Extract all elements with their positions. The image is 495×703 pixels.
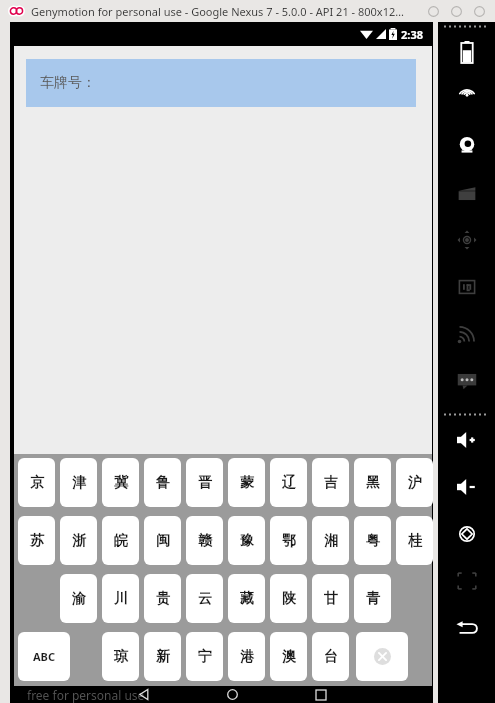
button[interactable]: Home [214, 686, 250, 703]
staticText: 台 [324, 648, 338, 666]
button[interactable]: 云 [186, 574, 223, 623]
staticText: 沪 [408, 474, 422, 492]
staticText: 粤 [366, 532, 380, 550]
staticText: 蒙 [240, 474, 254, 492]
button[interactable]: Back [438, 604, 495, 651]
button[interactable]: 蒙 [228, 458, 265, 507]
staticText: 藏 [240, 590, 254, 608]
button[interactable]: Identifiers [438, 263, 495, 310]
button[interactable]: 青 [354, 574, 391, 623]
button[interactable]: 车牌号： [26, 59, 416, 107]
button[interactable]: Maximize [445, 0, 468, 22]
staticText: 京 [30, 474, 44, 492]
button[interactable]: 晋 [186, 458, 223, 507]
staticText: 皖 [114, 532, 128, 550]
button[interactable]: Battery [438, 28, 495, 75]
button[interactable]: ABC [18, 632, 70, 681]
button[interactable]: 台 [312, 632, 349, 681]
button[interactable]: 粤 [354, 516, 391, 565]
button[interactable]: Recents [303, 686, 339, 703]
staticText: 川 [114, 590, 128, 608]
button[interactable]: 鲁 [144, 458, 181, 507]
button[interactable]: 鄂 [270, 516, 307, 565]
button[interactable]: 冀 [102, 458, 139, 507]
button[interactable]: 闽 [144, 516, 181, 565]
staticText: Genymotion for personal use - Google Nex… [31, 4, 404, 19]
button[interactable]: Delete [356, 632, 408, 681]
button[interactable]: 新 [144, 632, 181, 681]
staticText: 赣 [198, 532, 212, 550]
button[interactable]: Network [438, 310, 495, 357]
staticText: 宁 [198, 648, 212, 666]
staticText: 闽 [156, 532, 170, 550]
button[interactable]: Back [126, 686, 162, 703]
button[interactable]: 吉 [312, 458, 349, 507]
staticText: 鲁 [156, 474, 170, 492]
staticText: 2:38 [401, 27, 423, 42]
button[interactable]: 澳 [270, 632, 307, 681]
staticText: free for personal use [27, 687, 145, 703]
button[interactable]: 陕 [270, 574, 307, 623]
button[interactable]: Messaging [438, 357, 495, 404]
staticText: 豫 [240, 532, 254, 550]
staticText: 辽 [282, 474, 296, 492]
button[interactable]: Actual size [438, 557, 495, 604]
button[interactable]: 豫 [228, 516, 265, 565]
button[interactable]: Camera [438, 122, 495, 169]
staticText: 贵 [156, 590, 170, 608]
button[interactable]: 黑 [354, 458, 391, 507]
button[interactable]: Volume up [438, 416, 495, 463]
staticText: ABC [33, 649, 55, 664]
button[interactable]: 辽 [270, 458, 307, 507]
staticText: 车牌号： [40, 74, 96, 92]
staticText: 港 [240, 648, 254, 666]
button[interactable]: Minimize [422, 0, 445, 22]
staticText: 黑 [366, 474, 380, 492]
button[interactable]: 贵 [144, 574, 181, 623]
button[interactable]: Video recording [438, 169, 495, 216]
button[interactable]: 苏 [18, 516, 55, 565]
button[interactable]: 浙 [60, 516, 97, 565]
button[interactable]: GPS [438, 75, 495, 122]
staticText: 渝 [72, 590, 86, 608]
button[interactable]: 桂 [396, 516, 433, 565]
button[interactable]: Rotate [438, 510, 495, 557]
button[interactable]: 京 [18, 458, 55, 507]
button[interactable]: 渝 [60, 574, 97, 623]
staticText: 甘 [324, 590, 338, 608]
staticText: 鄂 [282, 532, 296, 550]
staticText: 冀 [114, 474, 128, 492]
staticText: 陕 [282, 590, 296, 608]
staticText: 湘 [324, 532, 338, 550]
button[interactable]: 港 [228, 632, 265, 681]
button[interactable]: 湘 [312, 516, 349, 565]
staticText: 浙 [72, 532, 86, 550]
button[interactable]: 川 [102, 574, 139, 623]
staticText: 苏 [30, 532, 44, 550]
staticText: 琼 [114, 648, 128, 666]
staticText: 青 [366, 590, 380, 608]
button[interactable]: 赣 [186, 516, 223, 565]
button[interactable]: Volume down [438, 463, 495, 510]
button[interactable]: 甘 [312, 574, 349, 623]
staticText: 吉 [324, 474, 338, 492]
staticText: 澳 [282, 648, 296, 666]
staticText: 云 [198, 590, 212, 608]
staticText: 晋 [198, 474, 212, 492]
button[interactable]: Virtual sensors [438, 216, 495, 263]
staticText: 津 [72, 474, 86, 492]
button[interactable]: Close [468, 0, 491, 22]
button[interactable]: 沪 [396, 458, 433, 507]
staticText: 新 [156, 648, 170, 666]
button[interactable]: 宁 [186, 632, 223, 681]
button[interactable]: 琼 [102, 632, 139, 681]
button[interactable]: 藏 [228, 574, 265, 623]
button[interactable]: 皖 [102, 516, 139, 565]
staticText: 桂 [408, 532, 422, 550]
button[interactable]: 津 [60, 458, 97, 507]
